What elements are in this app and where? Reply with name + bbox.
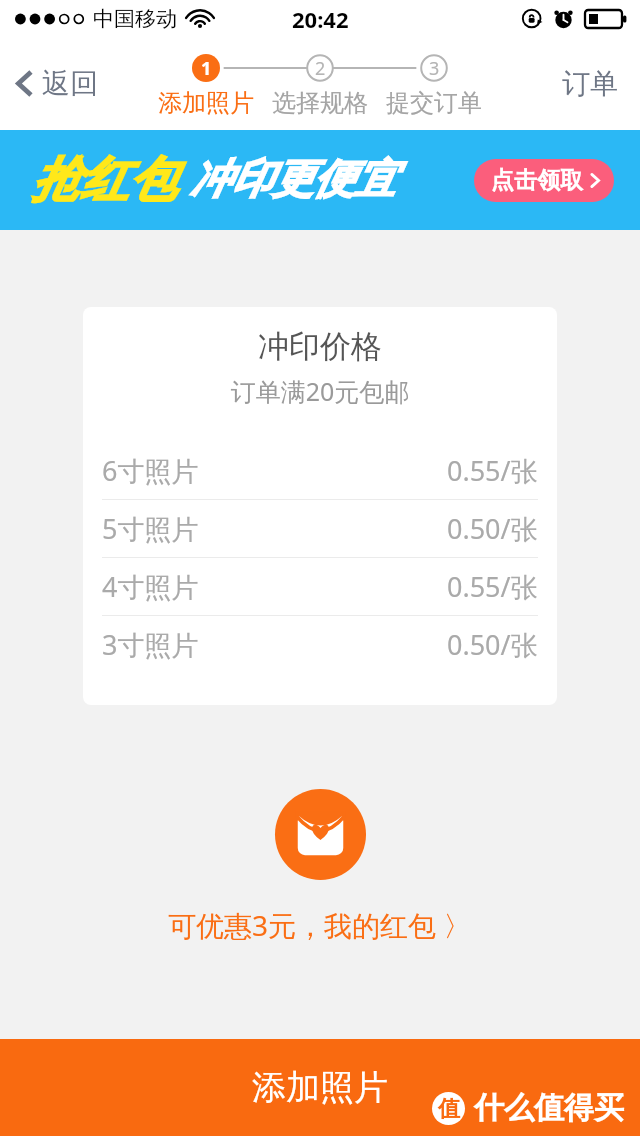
button[interactable]: 3 xyxy=(381,37,487,118)
staticText: 冲印更便宜 xyxy=(190,154,395,206)
other: 我的红包 xyxy=(275,789,366,880)
button[interactable]: 4寸照片 xyxy=(83,558,557,615)
button[interactable]: 我的红包 xyxy=(0,789,640,944)
button[interactable]: 5寸照片 xyxy=(83,500,557,557)
staticText: 提交订单 xyxy=(386,88,482,118)
button[interactable]: 6寸照片 xyxy=(83,442,557,499)
staticText: 0.55/张 xyxy=(447,568,538,605)
staticText: 抢红包 xyxy=(32,150,176,210)
button[interactable]: 返回 xyxy=(0,54,118,113)
staticText: 添加照片 xyxy=(158,88,254,118)
staticText: 1 xyxy=(201,56,212,81)
button[interactable]: 2 xyxy=(267,37,373,118)
staticText: 什么值得买 xyxy=(474,1089,624,1127)
button[interactable]: 点击领取 xyxy=(474,159,614,202)
staticText: 0.50/张 xyxy=(447,510,538,547)
button[interactable]: 添加照片 xyxy=(0,1039,640,1136)
button[interactable]: 订单 xyxy=(542,54,640,113)
staticText: 2 xyxy=(315,56,326,81)
other: Alarm xyxy=(553,8,574,29)
staticText: 中国移动 xyxy=(93,6,177,32)
staticText: 20:42 xyxy=(292,4,349,34)
staticText: 4寸照片 xyxy=(102,568,199,605)
staticText: 添加照片 xyxy=(252,1066,388,1109)
staticText: 0.55/张 xyxy=(447,452,538,489)
staticText: 6寸照片 xyxy=(102,452,199,489)
staticText: 值 xyxy=(438,1095,460,1123)
staticText: 订单满20元包邮 xyxy=(83,374,557,408)
staticText: 5寸照片 xyxy=(102,510,199,547)
staticText: 订单 xyxy=(562,66,618,101)
staticText: 0.50/张 xyxy=(447,626,538,663)
other: Rotation lock xyxy=(522,8,543,29)
staticText: 3 xyxy=(429,56,440,81)
staticText: 选择规格 xyxy=(272,88,368,118)
staticText: 冲印价格 xyxy=(83,327,557,366)
button[interactable]: 3寸照片 xyxy=(83,616,557,673)
button[interactable]: 抢红包 xyxy=(0,130,640,230)
other: Battery xyxy=(584,9,628,29)
staticText: 可优惠3元，我的红包 〉 xyxy=(168,906,472,944)
staticText: 返回 xyxy=(42,66,98,101)
button[interactable]: 1 xyxy=(153,37,259,118)
staticText: 3寸照片 xyxy=(102,626,199,663)
staticText: 点击领取 xyxy=(491,166,583,195)
